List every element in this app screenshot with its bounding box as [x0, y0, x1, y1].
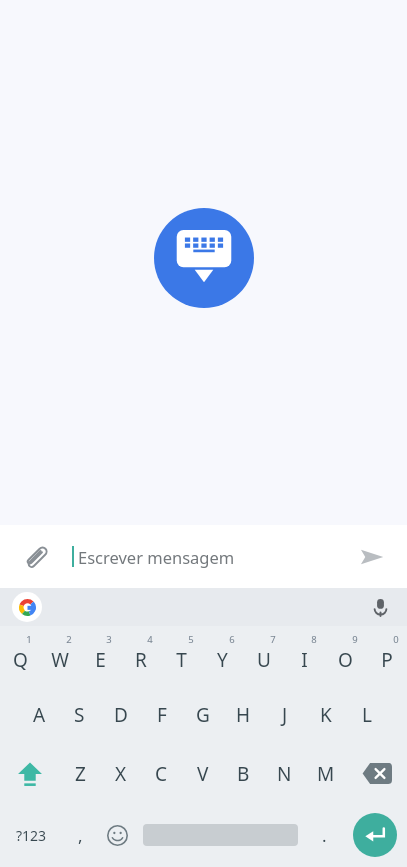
- button[interactable]: Attach file: [14, 536, 56, 578]
- button[interactable]: .: [305, 803, 343, 867]
- staticText: C: [155, 761, 168, 787]
- button[interactable]: Q: [0, 626, 40, 685]
- button[interactable]: O: [325, 626, 366, 685]
- button[interactable]: M: [305, 744, 346, 803]
- staticText: 4: [147, 633, 153, 646]
- button[interactable]: Emoji: [98, 803, 136, 867]
- button[interactable]: P: [366, 626, 407, 685]
- button[interactable]: Voice input: [363, 590, 397, 624]
- staticText: J: [282, 702, 288, 728]
- button[interactable]: Y: [202, 626, 243, 685]
- staticText: P: [381, 647, 393, 673]
- button[interactable]: Enter: [353, 813, 397, 857]
- button[interactable]: K: [305, 685, 346, 744]
- button[interactable]: ?123: [0, 803, 63, 867]
- button[interactable]: E: [80, 626, 120, 685]
- button[interactable]: ,: [63, 803, 98, 867]
- button[interactable]: Google search: [12, 592, 42, 622]
- button[interactable]: W: [40, 626, 80, 685]
- staticText: ,: [78, 824, 83, 847]
- button[interactable]: X: [100, 744, 141, 803]
- staticText: A: [33, 702, 46, 728]
- staticText: N: [277, 761, 292, 787]
- staticText: K: [320, 702, 332, 728]
- staticText: Q: [13, 647, 28, 673]
- button[interactable]: F: [141, 685, 182, 744]
- button[interactable]: G: [182, 685, 223, 744]
- staticText: M: [317, 761, 335, 787]
- staticText: R: [135, 647, 147, 673]
- staticText: D: [114, 702, 128, 728]
- staticText: 1: [26, 633, 32, 646]
- button[interactable]: N: [264, 744, 305, 803]
- staticText: Y: [217, 647, 228, 673]
- button[interactable]: S: [59, 685, 100, 744]
- staticText: H: [236, 702, 251, 728]
- button[interactable]: Shift: [0, 744, 60, 803]
- button[interactable]: J: [264, 685, 305, 744]
- button[interactable]: T: [161, 626, 202, 685]
- staticText: X: [115, 761, 127, 787]
- button[interactable]: B: [223, 744, 264, 803]
- staticText: Z: [75, 761, 86, 787]
- staticText: 5: [188, 633, 194, 646]
- staticText: I: [301, 647, 308, 673]
- staticText: 6: [229, 633, 235, 646]
- button[interactable]: L: [346, 685, 387, 744]
- staticText: ?123: [16, 826, 47, 845]
- button[interactable]: A: [19, 685, 59, 744]
- button[interactable]: H: [223, 685, 264, 744]
- button[interactable]: Escrever mensagem: [72, 525, 351, 588]
- button[interactable]: Space: [136, 803, 305, 867]
- button[interactable]: Keyboard: [154, 208, 254, 308]
- staticText: B: [237, 761, 250, 787]
- staticText: V: [197, 761, 209, 787]
- button[interactable]: C: [141, 744, 182, 803]
- staticText: G: [196, 702, 210, 728]
- staticText: Escrever mensagem: [78, 546, 235, 568]
- button[interactable]: V: [182, 744, 223, 803]
- staticText: 7: [270, 633, 276, 646]
- staticText: W: [51, 647, 69, 673]
- staticText: E: [95, 647, 106, 673]
- button[interactable]: R: [120, 626, 161, 685]
- staticText: L: [362, 702, 372, 728]
- staticText: 0: [393, 633, 399, 646]
- staticText: T: [176, 647, 187, 673]
- staticText: .: [322, 824, 327, 847]
- staticText: 3: [106, 633, 112, 646]
- staticText: 9: [352, 633, 358, 646]
- staticText: 2: [66, 633, 72, 646]
- button[interactable]: I: [284, 626, 325, 685]
- staticText: U: [257, 647, 271, 673]
- staticText: F: [157, 702, 167, 728]
- staticText: O: [338, 647, 353, 673]
- button[interactable]: D: [100, 685, 141, 744]
- button[interactable]: Send: [351, 536, 393, 578]
- button[interactable]: U: [243, 626, 284, 685]
- button[interactable]: Z: [60, 744, 100, 803]
- staticText: 8: [311, 633, 317, 646]
- staticText: S: [74, 702, 85, 728]
- button[interactable]: Backspace: [346, 744, 407, 803]
